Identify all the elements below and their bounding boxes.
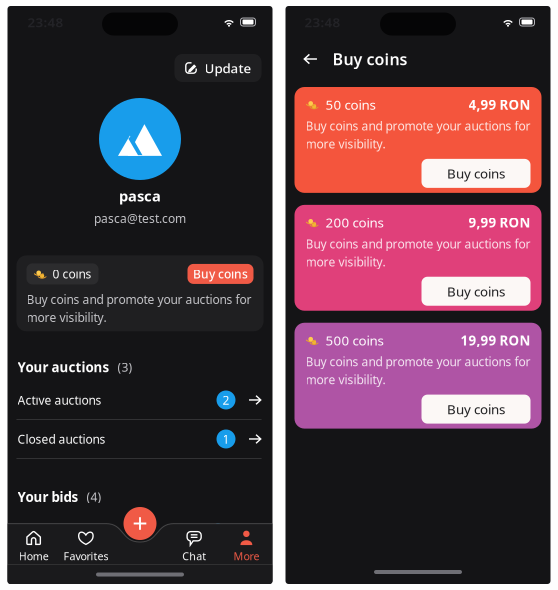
staticText: more visibility. [305,136,385,152]
staticText: 500 coins [325,331,383,349]
staticText: Your bids [17,488,78,506]
button[interactable]: Chat [168,530,220,563]
staticText: Chat [182,549,206,563]
button[interactable]: Back [301,50,319,68]
staticText: 9,99 RON [468,213,530,231]
staticText: more visibility. [26,309,106,325]
button[interactable]: Home [7,530,60,563]
staticText: 23:48 [304,13,340,31]
button[interactable]: Buy coins [421,277,530,306]
staticText: Home [19,549,49,563]
button[interactable]: Update [174,54,261,82]
staticText: Buy coins [332,48,407,70]
staticText: Update [204,59,251,77]
staticText: Buy coins [447,164,505,182]
button[interactable]: Closed auctions [7,420,272,458]
button[interactable]: Buy coins [421,395,530,424]
staticText: pasca@test.com [94,210,186,226]
staticText: 19,99 RON [460,331,530,349]
staticText: (3) [117,359,132,375]
staticText: more visibility. [305,254,385,270]
staticText: 23:48 [27,13,63,31]
staticText: 1 [222,431,229,447]
staticText: Buy coins and promote your auctions for [305,236,530,252]
button[interactable]: Active auctions [7,381,272,419]
button[interactable]: More [220,530,272,563]
staticText: Buy coins and promote your auctions for [305,354,530,370]
button[interactable]: Buy coins [421,159,530,188]
staticText: 200 coins [325,213,383,231]
staticText: Buy coins and promote your auctions for [26,291,251,307]
staticText: Buy coins and promote your auctions for [305,118,530,134]
staticText: Closed auctions [17,431,105,447]
button[interactable]: Favorites [60,530,112,563]
staticText: Active auctions [17,392,101,408]
staticText: Buy coins [447,282,505,300]
staticText: 0 coins [52,266,91,282]
staticText: 4,99 RON [468,96,530,113]
button[interactable]: Buy coins [187,264,253,284]
staticText: Your auctions [17,358,109,376]
staticText: (4) [86,489,101,505]
staticText: More [233,549,259,563]
staticText: 50 coins [325,96,375,113]
staticText: more visibility. [305,372,385,388]
staticText: Favorites [63,549,108,563]
staticText: Buy coins [193,266,248,282]
staticText: pasca [119,186,161,205]
staticText: 2 [222,392,229,408]
staticText: Buy coins [447,400,505,418]
